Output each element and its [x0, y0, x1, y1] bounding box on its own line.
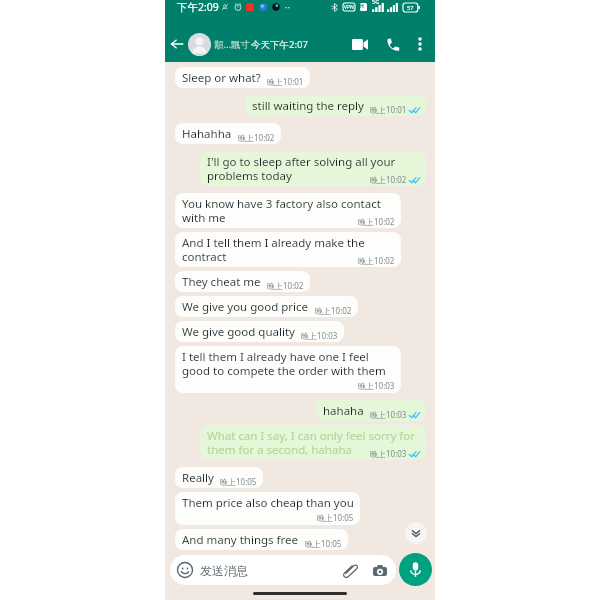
- button[interactable]: Them price also cheap than you: [175, 492, 360, 525]
- button[interactable]: Attach: [343, 564, 358, 577]
- button[interactable]: I'll go to sleep after solving all your …: [200, 151, 426, 186]
- staticText: HD: [360, 3, 367, 11]
- staticText: 晚上10:03: [301, 330, 338, 341]
- staticText: 晚上10:02: [315, 305, 352, 316]
- staticText: Really: [182, 470, 214, 486]
- staticText: 晚上10:05: [317, 512, 354, 523]
- staticText: 晚上10:02: [267, 280, 304, 291]
- staticText: VPN: [344, 4, 354, 11]
- staticText: 57: [407, 4, 414, 11]
- button[interactable]: Hahahha: [175, 123, 281, 144]
- staticText: You know have 3 factory also contact wit…: [182, 196, 395, 226]
- staticText: 晚上10:05: [220, 476, 257, 487]
- staticText: 发送消息: [200, 563, 248, 578]
- staticText: 今天下午2:07: [251, 38, 308, 51]
- button[interactable]: They cheat me: [175, 271, 310, 292]
- staticText: What can I say, I can only feel sorry fo…: [207, 428, 420, 458]
- button[interactable]: I tell them I already have one I feel go…: [175, 346, 401, 393]
- button[interactable]: hahaha: [316, 400, 426, 421]
- button[interactable]: Scroll to bottom: [405, 522, 427, 544]
- button[interactable]: And I tell them I already make the contr…: [175, 232, 401, 267]
- staticText: 晚上10:02: [370, 174, 407, 185]
- staticText: hahaha: [323, 403, 364, 419]
- button[interactable]: And many things free: [175, 529, 348, 550]
- staticText: 晚上10:03: [370, 448, 407, 459]
- staticText: 晚上10:02: [358, 216, 395, 227]
- staticText: I tell them I already have one I feel go…: [182, 349, 395, 379]
- staticText: 顜…飄寸: [214, 38, 251, 51]
- staticText: 晚上10:02: [238, 132, 275, 143]
- button[interactable]: We give you good price: [175, 296, 358, 317]
- button[interactable]: You know have 3 factory also contact wit…: [175, 193, 401, 228]
- button[interactable]: Really: [175, 467, 263, 488]
- button[interactable]: Video call: [350, 34, 370, 54]
- staticText: ··: [285, 1, 290, 13]
- staticText: still waiting the reply: [252, 98, 364, 114]
- button[interactable]: still waiting the reply: [245, 95, 426, 116]
- staticText: 晚上10:03: [358, 380, 395, 391]
- staticText: 晚上10:03: [370, 409, 407, 420]
- button[interactable]: Camera: [373, 564, 387, 576]
- staticText: We give you good price: [182, 299, 309, 315]
- staticText: 晚上10:02: [358, 255, 395, 266]
- button[interactable]: Back: [168, 35, 186, 53]
- staticText: Them price also cheap than you: [182, 495, 354, 511]
- staticText: They cheat me: [182, 274, 261, 290]
- staticText: 下午2:09: [177, 0, 219, 14]
- button[interactable]: More options: [413, 37, 427, 51]
- button[interactable]: We give good quality: [175, 321, 344, 342]
- button[interactable]: What can I say, I can only feel sorry fo…: [200, 425, 426, 460]
- button[interactable]: Sleep or what?: [175, 67, 310, 88]
- staticText: 5G: [372, 0, 380, 5]
- staticText: 晚上10:05: [305, 538, 342, 549]
- staticText: Hahahha: [182, 126, 232, 142]
- staticText: Sleep or what?: [182, 70, 261, 86]
- button[interactable]: Voice call: [384, 35, 402, 53]
- button[interactable]: 发送消息: [170, 555, 396, 585]
- staticText: We give good quality: [182, 324, 295, 340]
- staticText: 晚上10:01: [370, 104, 407, 115]
- staticText: 晚上10:01: [267, 76, 304, 87]
- staticText: And I tell them I already make the contr…: [182, 235, 395, 265]
- staticText: And many things free: [182, 532, 299, 548]
- button[interactable]: Record voice message: [399, 553, 432, 586]
- staticText: I'll go to sleep after solving all your …: [207, 154, 420, 184]
